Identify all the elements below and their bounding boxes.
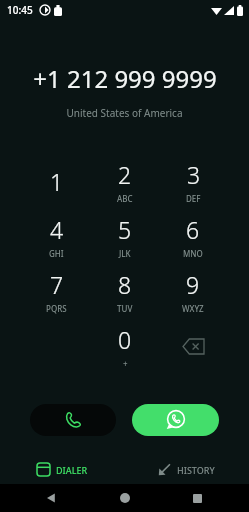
staticText: United States of America <box>66 106 183 120</box>
staticText: ABC <box>117 193 133 204</box>
button[interactable]: 5 <box>91 209 159 264</box>
staticText: +1 212 999 9999 <box>33 62 217 95</box>
staticText: 1 <box>50 166 64 197</box>
staticText: 8 <box>118 269 132 300</box>
staticText: 6 <box>186 214 200 245</box>
button[interactable]: WhatsApp call <box>132 404 219 436</box>
button[interactable]: Backspace <box>159 319 227 374</box>
button[interactable]: HISTORY <box>124 454 249 484</box>
staticText: HISTORY <box>177 464 215 476</box>
button[interactable]: 0 <box>91 319 159 374</box>
staticText: 0 <box>118 324 132 355</box>
button[interactable]: 8 <box>91 264 159 319</box>
button[interactable]: 3 <box>159 154 227 209</box>
staticText: 9 <box>186 269 200 300</box>
staticText: MNO <box>183 248 203 259</box>
staticText: DEF <box>186 193 201 204</box>
staticText: 7 <box>50 269 64 300</box>
button[interactable]: 1 <box>22 154 91 209</box>
staticText: DIALER <box>56 464 88 476</box>
button[interactable]: 4 <box>22 209 91 264</box>
staticText: GHI <box>49 248 64 259</box>
staticText: PQRS <box>46 303 67 314</box>
staticText: 2 <box>118 159 132 190</box>
button[interactable]: Recents <box>187 488 207 508</box>
button[interactable]: Back <box>42 488 62 508</box>
staticText: + <box>123 358 128 369</box>
button[interactable]: DIALER <box>0 454 124 484</box>
staticText: 10:45 <box>7 3 33 17</box>
staticText: 3 <box>187 159 201 190</box>
staticText: 4 <box>50 214 64 245</box>
staticText: TUV <box>117 303 133 314</box>
staticText: JLK <box>119 248 131 259</box>
staticText: 5 <box>118 214 132 245</box>
button[interactable]: Home <box>115 488 135 508</box>
button[interactable]: 2 <box>91 154 159 209</box>
button[interactable]: Call <box>30 404 116 436</box>
button[interactable]: 9 <box>159 264 227 319</box>
staticText: WXYZ <box>182 303 204 314</box>
button[interactable]: 6 <box>159 209 227 264</box>
button[interactable]: 7 <box>22 264 91 319</box>
